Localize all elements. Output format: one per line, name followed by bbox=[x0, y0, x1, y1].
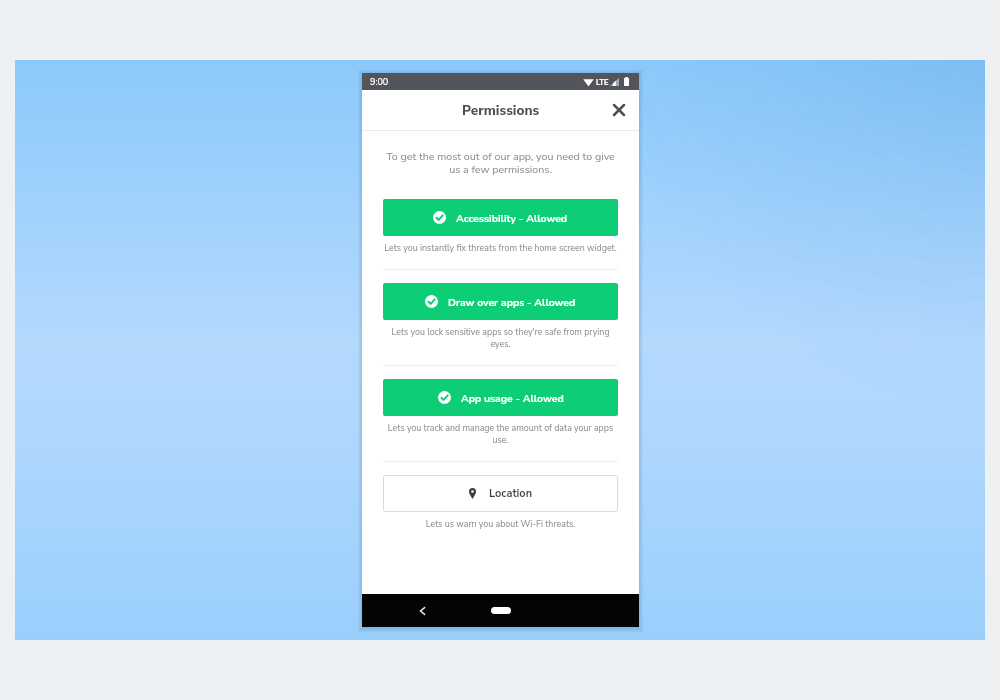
button[interactable]: Accessibility - Allowed bbox=[383, 199, 618, 236]
staticText: 9:00 bbox=[370, 76, 389, 88]
staticText: Lets us warn you about Wi-Fi threats. bbox=[383, 518, 618, 530]
button[interactable]: App usage - Allowed bbox=[383, 379, 618, 416]
staticText: Accessibility - Allowed bbox=[456, 211, 568, 225]
button[interactable]: Close bbox=[609, 100, 629, 120]
button[interactable]: Draw over apps - Allowed bbox=[383, 283, 618, 320]
staticText: Lets you instantly fix threats from the … bbox=[383, 242, 618, 254]
staticText: App usage - Allowed bbox=[461, 391, 564, 405]
staticText: Permissions bbox=[462, 101, 540, 120]
staticText: Lets you track and manage the amount of … bbox=[383, 422, 618, 446]
button[interactable]: Home bbox=[481, 594, 521, 627]
staticText: Lets you lock sensitive apps so they're … bbox=[383, 326, 618, 350]
staticText: Location bbox=[489, 486, 533, 501]
staticText: LTE bbox=[596, 77, 609, 87]
button[interactable]: Location bbox=[383, 475, 618, 512]
button[interactable]: Back bbox=[408, 594, 436, 627]
staticText: To get the most out of our app, you need… bbox=[383, 149, 618, 177]
staticText: Draw over apps - Allowed bbox=[448, 295, 576, 309]
